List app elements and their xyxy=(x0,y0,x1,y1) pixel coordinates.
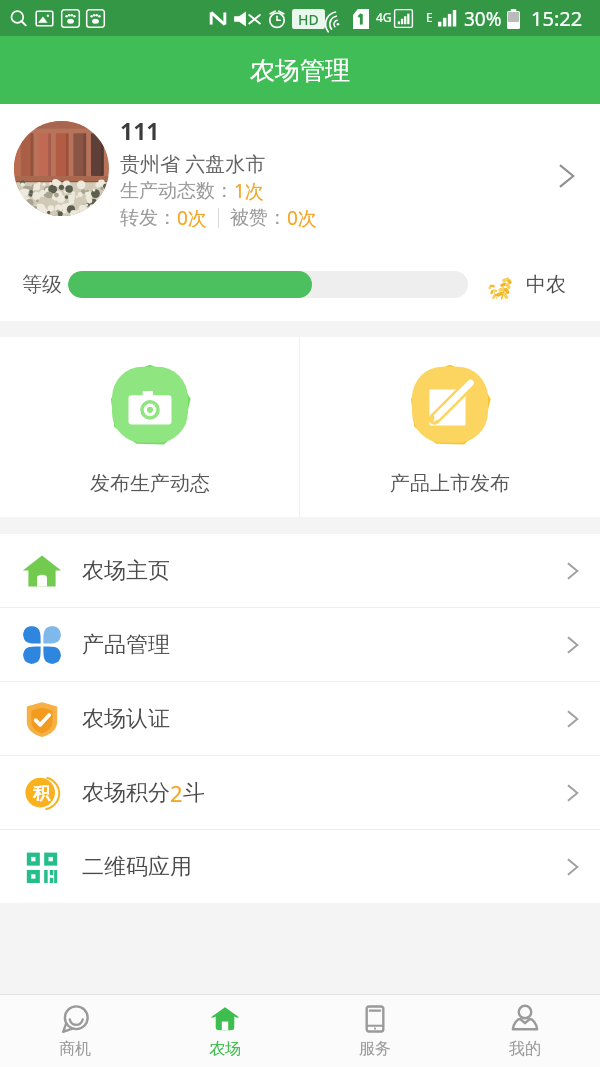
staticText: E xyxy=(426,9,433,25)
staticText: 30% xyxy=(464,6,502,32)
button[interactable]: 我的 xyxy=(450,995,600,1067)
button[interactable]: 111 xyxy=(0,104,600,248)
staticText: 生产动态数： xyxy=(120,179,234,203)
staticText: 发布生产动态 xyxy=(90,471,210,496)
staticText: 15:22 xyxy=(531,5,583,32)
staticText: 2 xyxy=(170,778,183,808)
button[interactable]: 农场 xyxy=(150,995,300,1067)
staticText: 111 xyxy=(120,115,160,146)
button[interactable]: 农场主页 xyxy=(0,534,600,607)
button[interactable]: 产品上市发布 xyxy=(300,337,600,517)
staticText: 贵州省 六盘水市 xyxy=(120,150,266,177)
button[interactable]: 服务 xyxy=(300,995,450,1067)
staticText: 二维码应用 xyxy=(82,853,192,881)
staticText: 商机 xyxy=(59,1039,91,1059)
button[interactable]: 农场认证 xyxy=(0,682,600,755)
button[interactable]: 商机 xyxy=(0,995,150,1067)
staticText: 农场认证 xyxy=(82,705,170,733)
button[interactable]: 积 xyxy=(0,756,600,829)
staticText: 产品上市发布 xyxy=(390,471,510,496)
staticText: 积 xyxy=(33,783,50,804)
staticText: 农场主页 xyxy=(82,557,170,585)
staticText: 被赞： xyxy=(230,206,287,230)
staticText: 斗 xyxy=(183,779,205,807)
staticText: 中农 xyxy=(526,272,566,297)
staticText: 等级 xyxy=(22,272,62,297)
staticText: 我的 xyxy=(509,1039,541,1059)
staticText: 0次 xyxy=(177,205,207,231)
staticText: 农场 xyxy=(209,1039,241,1059)
staticText: 1次 xyxy=(234,178,264,204)
staticText: 农场管理 xyxy=(250,55,350,86)
staticText: 产品管理 xyxy=(82,631,170,659)
button[interactable]: 二维码应用 xyxy=(0,830,600,903)
button[interactable]: 产品管理 xyxy=(0,608,600,681)
staticText: 转发： xyxy=(120,206,177,230)
staticText: HD xyxy=(298,10,319,29)
staticText: 4G xyxy=(376,9,392,25)
staticText: 农场积分 xyxy=(82,779,170,807)
staticText: 0次 xyxy=(287,205,317,231)
staticText: 服务 xyxy=(359,1039,391,1059)
button[interactable]: 发布生产动态 xyxy=(0,337,299,517)
